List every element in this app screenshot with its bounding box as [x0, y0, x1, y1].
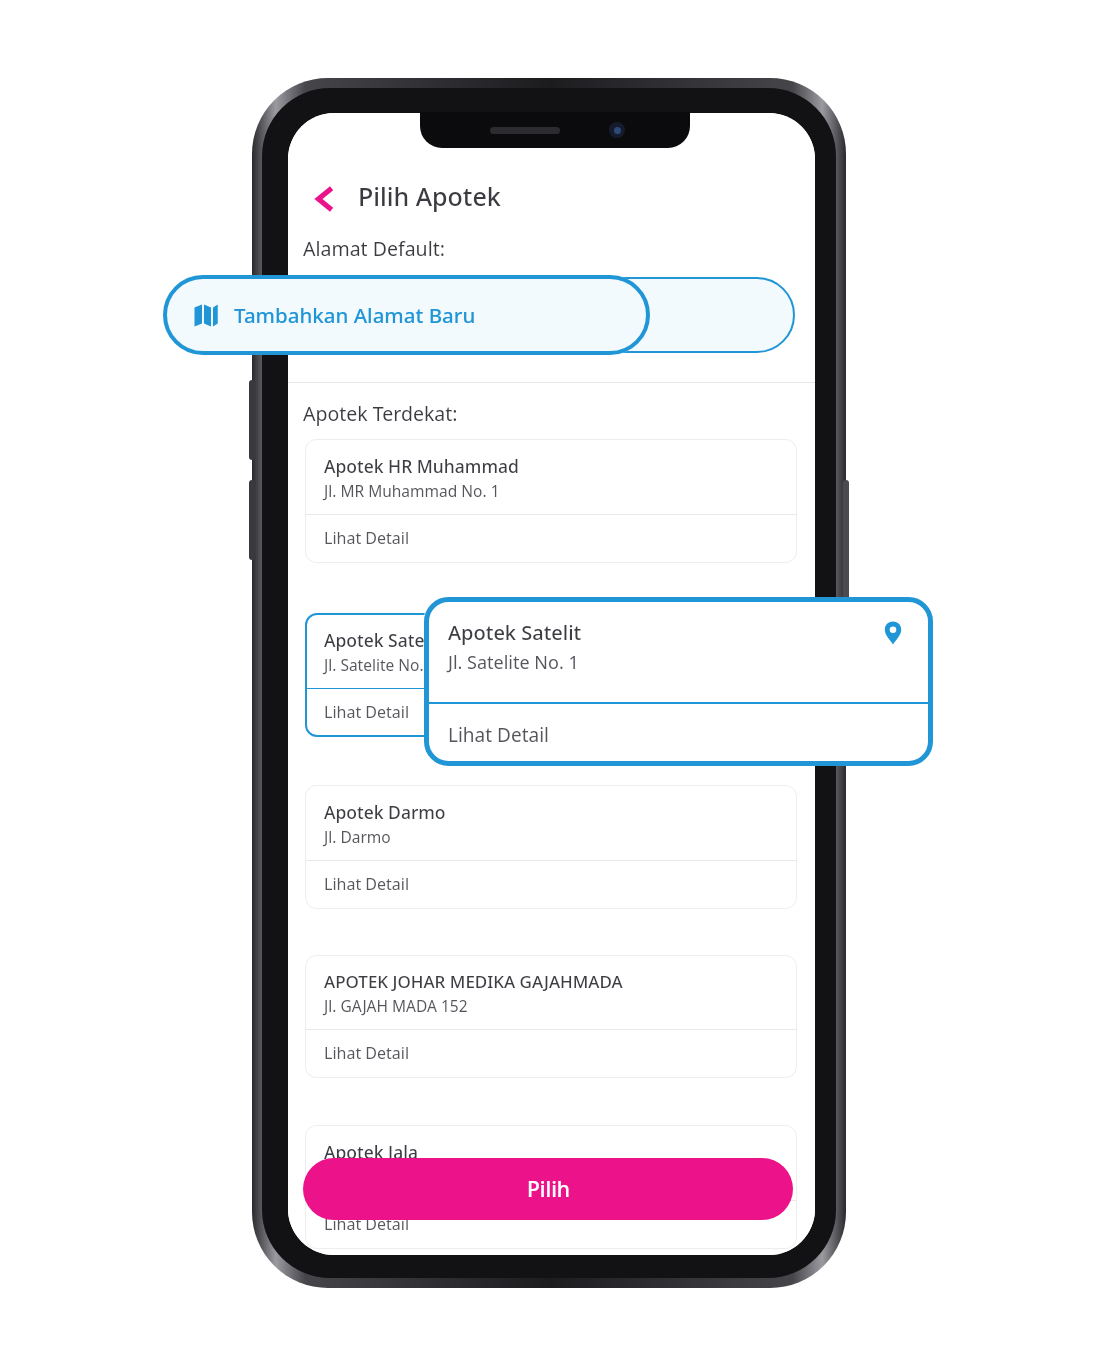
button[interactable]: Apotek Satelit [424, 597, 933, 766]
staticText: Jl. MR Muhammad No. 1 [324, 480, 500, 501]
staticText: Lihat Detail [324, 873, 410, 895]
staticText: Pilih Apotek [358, 179, 501, 213]
button[interactable]: Pilih [303, 1158, 793, 1220]
staticText: Lihat Detail [448, 722, 549, 748]
staticText: Apotek Darmo [324, 800, 446, 824]
button[interactable]: Back [304, 175, 340, 223]
staticText: Apotek Satelit [324, 628, 441, 652]
staticText: Lihat Detail [324, 527, 410, 549]
staticText: Apotek Jala [324, 1140, 418, 1164]
staticText: APOTEK JOHAR MEDIKA GAJAHMADA [324, 970, 623, 993]
staticText: Jl. Darmo [324, 826, 391, 847]
button[interactable]: Apotek Jala [305, 1125, 797, 1249]
staticText: Lihat Detail [324, 701, 410, 723]
staticText: Jl. GAJAH MADA 152 [324, 995, 468, 1016]
staticText: Pilih [527, 1175, 570, 1204]
staticText: Tambahkan Alamat Baru [234, 301, 476, 329]
button[interactable]: Tambahkan Alamat Baru [163, 275, 650, 355]
staticText: Lihat Detail [324, 1213, 410, 1235]
staticText: Lihat Detail [324, 1042, 410, 1064]
button[interactable]: Apotek Darmo [305, 785, 797, 909]
staticText: Alamat Default: [303, 235, 445, 262]
staticText: Apotek Terdekat: [303, 400, 458, 427]
button[interactable]: Apotek Satelit [305, 613, 797, 737]
staticText: Apotek HR Muhammad [324, 454, 519, 478]
staticText: Jl. Satelite No. 1 [448, 650, 579, 675]
button[interactable]: APOTEK JOHAR MEDIKA GAJAHMADA [305, 955, 797, 1078]
staticText: Jl. Satelite No. 1 [324, 654, 437, 675]
staticText: Apotek Satelit [448, 619, 582, 646]
button[interactable]: Apotek HR Muhammad [305, 439, 797, 563]
